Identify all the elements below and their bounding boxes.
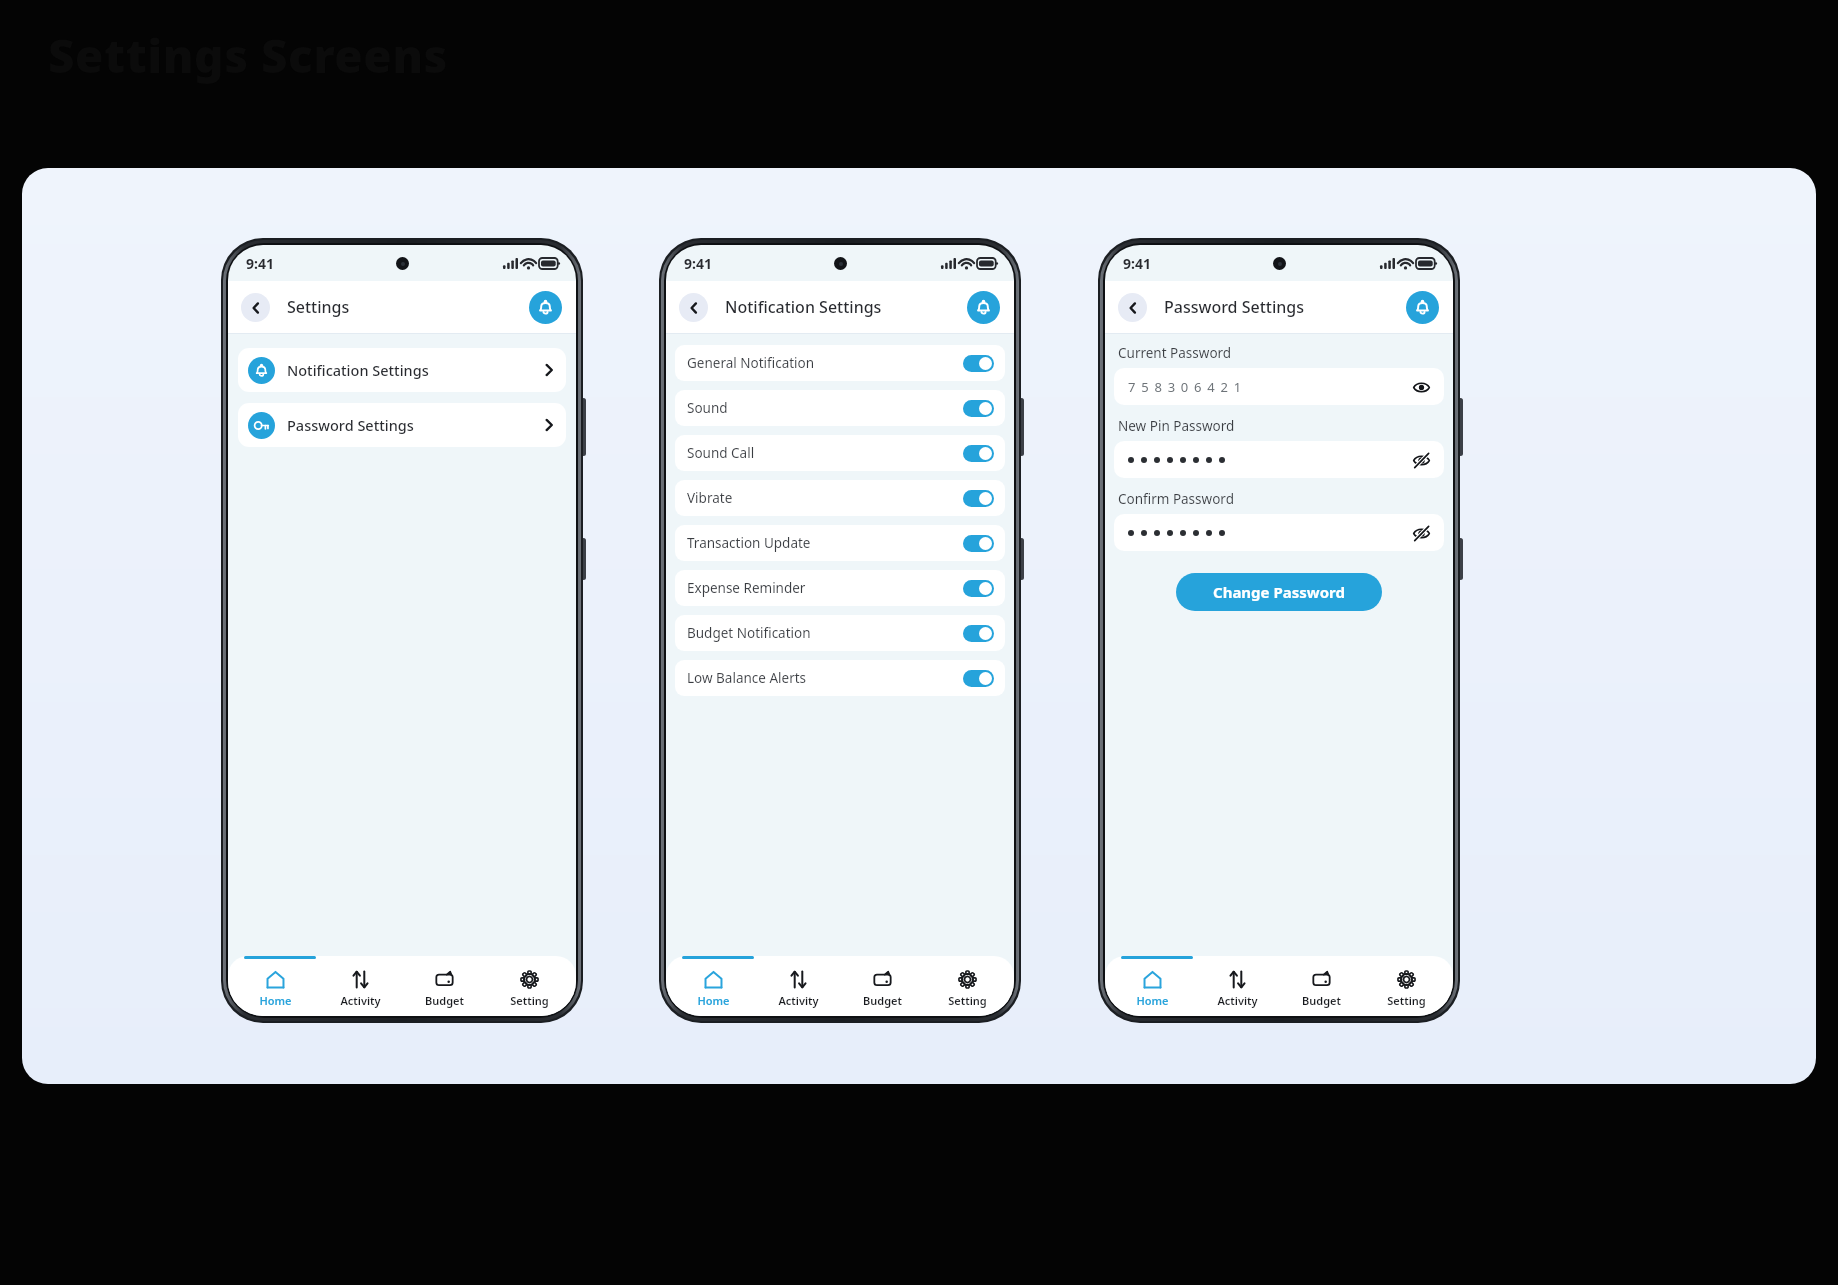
- button[interactable]: Activity: [322, 966, 398, 1012]
- staticText: Setting: [510, 993, 549, 1008]
- staticText: New Pin Password: [1118, 417, 1235, 435]
- button[interactable]: Transaction Update toggle: [963, 535, 994, 552]
- button[interactable]: Low Balance Alerts toggle: [963, 670, 994, 687]
- staticText: Confirm Password: [1118, 490, 1234, 508]
- staticText: Expense Reminder: [687, 579, 963, 597]
- staticText: Budget: [1302, 993, 1341, 1008]
- button[interactable]: Vibrate toggle: [963, 490, 994, 507]
- button[interactable]: Budget Notification toggle: [963, 625, 994, 642]
- staticText: Vibrate: [687, 489, 963, 507]
- button[interactable]: Back: [1118, 293, 1147, 322]
- staticText: Transaction Update: [687, 534, 963, 552]
- staticText: Notification Settings: [287, 360, 542, 380]
- button[interactable]: Setting: [1368, 966, 1444, 1012]
- staticText: Budget Notification: [687, 624, 963, 642]
- staticText: Budget: [425, 993, 464, 1008]
- button[interactable]: Setting: [491, 966, 567, 1012]
- button[interactable]: Budget Notification: [675, 615, 1005, 651]
- staticText: Password Settings: [287, 415, 542, 435]
- staticText: Home: [697, 993, 730, 1008]
- button[interactable]: Budget: [1283, 966, 1359, 1012]
- button[interactable]: Sound toggle: [963, 400, 994, 417]
- staticText: Home: [1136, 993, 1169, 1008]
- button[interactable]: General Notification toggle: [963, 355, 994, 372]
- staticText: 9:41: [246, 254, 274, 273]
- button[interactable]: 7 5 8 3 0 6 4 2 1: [1114, 368, 1444, 405]
- staticText: Setting: [948, 993, 987, 1008]
- button[interactable]: Sound Call toggle: [963, 445, 994, 462]
- staticText: Activity: [340, 993, 381, 1008]
- staticText: Activity: [1217, 993, 1258, 1008]
- staticText: Activity: [778, 993, 819, 1008]
- button[interactable]: Transaction Update: [675, 525, 1005, 561]
- staticText: Settings: [287, 296, 350, 318]
- button[interactable]: Low Balance Alerts: [675, 660, 1005, 696]
- staticText: Password Settings: [1164, 296, 1304, 318]
- button[interactable]: Sound Call: [675, 435, 1005, 471]
- staticText: 7 5 8 3 0 6 4 2 1: [1128, 378, 1410, 396]
- button[interactable]: Back: [679, 293, 708, 322]
- button[interactable]: Home: [1114, 966, 1190, 1012]
- button[interactable]: Budget: [844, 966, 920, 1012]
- button[interactable]: Activity: [1199, 966, 1275, 1012]
- staticText: 9:41: [1123, 254, 1151, 273]
- button[interactable]: Show password: [1114, 514, 1444, 551]
- button[interactable]: Vibrate: [675, 480, 1005, 516]
- staticText: Notification Settings: [725, 296, 882, 318]
- button[interactable]: Expense Reminder: [675, 570, 1005, 606]
- staticText: General Notification: [687, 354, 963, 372]
- button[interactable]: Notifications: [529, 291, 562, 324]
- staticText: Change Password: [1213, 582, 1345, 602]
- staticText: Sound Call: [687, 444, 963, 462]
- button[interactable]: Notifications: [1406, 291, 1439, 324]
- button[interactable]: Activity: [760, 966, 836, 1012]
- button[interactable]: Change Password: [1176, 573, 1382, 611]
- button[interactable]: Show password: [1410, 449, 1432, 471]
- staticText: Home: [259, 993, 292, 1008]
- staticText: 9:41: [684, 254, 712, 273]
- button[interactable]: Show password: [1410, 522, 1432, 544]
- button[interactable]: Budget: [406, 966, 482, 1012]
- button[interactable]: Expense Reminder toggle: [963, 580, 994, 597]
- button[interactable]: Hide password: [1410, 376, 1432, 398]
- button[interactable]: Home: [675, 966, 751, 1012]
- staticText: Sound: [687, 399, 963, 417]
- staticText: Setting: [1387, 993, 1426, 1008]
- button[interactable]: Password Settings: [238, 403, 566, 447]
- button[interactable]: Notifications: [967, 291, 1000, 324]
- button[interactable]: General Notification: [675, 345, 1005, 381]
- button[interactable]: Home: [237, 966, 313, 1012]
- button[interactable]: Setting: [929, 966, 1005, 1012]
- button[interactable]: Back: [241, 293, 270, 322]
- button[interactable]: Notification Settings: [238, 348, 566, 392]
- button[interactable]: Show password: [1114, 441, 1444, 478]
- staticText: Current Password: [1118, 344, 1232, 362]
- staticText: Low Balance Alerts: [687, 669, 963, 687]
- button[interactable]: Sound: [675, 390, 1005, 426]
- staticText: Budget: [863, 993, 902, 1008]
